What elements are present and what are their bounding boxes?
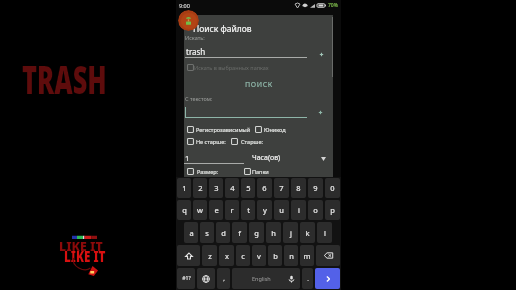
button[interactable]: 0 <box>325 178 340 198</box>
staticText: j <box>290 228 292 238</box>
staticText: Размер: <box>197 168 219 175</box>
button[interactable]: Backspace <box>316 245 340 266</box>
staticText: q <box>182 205 187 215</box>
staticText: x <box>225 251 229 261</box>
staticText: Не старше: <box>196 138 226 145</box>
button[interactable]: e <box>209 200 223 220</box>
staticText: r <box>230 205 234 215</box>
staticText: 6 <box>262 183 267 193</box>
staticText: Поиск файлов <box>193 23 252 35</box>
button[interactable]: j <box>283 222 298 243</box>
staticText: b <box>273 251 278 261</box>
staticText: Регистрозависимый <box>196 126 251 133</box>
staticText: 70% <box>328 2 338 9</box>
button[interactable]: y <box>257 200 272 220</box>
staticText: g <box>254 228 259 238</box>
staticText: LIKE IT <box>64 245 106 267</box>
staticText: 1 <box>185 153 190 163</box>
button[interactable]: 9 <box>308 178 323 198</box>
button[interactable]: h <box>266 222 281 243</box>
staticText: 0 <box>330 183 335 193</box>
staticText: Старше: <box>241 138 263 145</box>
button[interactable]: 5 <box>241 178 255 198</box>
button[interactable]: Switch language <box>197 268 215 289</box>
button[interactable]: k <box>300 222 315 243</box>
staticText: y <box>263 205 267 215</box>
button[interactable]: q <box>177 200 191 220</box>
staticText: Искать: <box>185 34 205 41</box>
staticText: d <box>221 228 226 238</box>
button[interactable]: l <box>317 222 332 243</box>
button[interactable]: Enter <box>315 268 340 289</box>
button[interactable]: 4 <box>225 178 239 198</box>
staticText: Папки <box>252 168 269 175</box>
staticText: c <box>241 251 245 261</box>
button[interactable]: , <box>217 268 230 289</box>
button[interactable]: #1? <box>177 268 195 289</box>
staticText: z <box>208 251 212 261</box>
staticText: s <box>205 228 209 238</box>
button[interactable]: f <box>232 222 247 243</box>
staticText: , <box>223 275 225 283</box>
staticText: k <box>305 228 310 238</box>
other: Voice input <box>288 275 295 283</box>
button[interactable]: 2 <box>193 178 207 198</box>
staticText: 5 <box>246 183 251 193</box>
staticText: English <box>252 275 271 282</box>
button[interactable]: d <box>216 222 230 243</box>
staticText: 1 <box>182 183 187 193</box>
staticText: ПОИСК <box>245 80 273 90</box>
staticText: Юникод <box>264 126 286 133</box>
button[interactable]: b <box>268 245 282 266</box>
staticText: t <box>247 205 250 215</box>
staticText: e <box>214 205 219 215</box>
staticText: o <box>313 205 318 215</box>
staticText: w <box>197 205 203 215</box>
staticText: Искать в выбранных папках <box>194 64 269 71</box>
staticText: 4 <box>230 183 235 193</box>
button[interactable]: n <box>284 245 298 266</box>
button[interactable]: x <box>219 245 234 266</box>
button[interactable]: 1 <box>177 178 191 198</box>
button[interactable]: Shift <box>177 245 200 266</box>
button[interactable]: . <box>302 268 313 289</box>
button[interactable]: a <box>184 222 198 243</box>
button[interactable]: r <box>225 200 239 220</box>
button[interactable]: m <box>300 245 314 266</box>
staticText: v <box>257 251 261 261</box>
staticText: #1? <box>182 275 191 282</box>
button[interactable]: z <box>202 245 217 266</box>
button[interactable]: English <box>232 268 300 289</box>
button[interactable]: s <box>200 222 214 243</box>
staticText: 3 <box>214 183 219 193</box>
button[interactable]: ПОИСК <box>184 77 333 92</box>
staticText: u <box>279 205 284 215</box>
button[interactable]: 8 <box>291 178 306 198</box>
button[interactable]: 7 <box>274 178 289 198</box>
button[interactable]: t <box>241 200 255 220</box>
staticText: 9:00 <box>179 2 190 9</box>
button[interactable]: 3 <box>209 178 223 198</box>
button[interactable]: 6 <box>257 178 272 198</box>
staticText: i <box>298 205 300 215</box>
staticText: m <box>303 251 311 261</box>
button[interactable]: u <box>274 200 289 220</box>
button[interactable]: w <box>193 200 207 220</box>
staticText: h <box>271 228 276 238</box>
staticText: 8 <box>296 183 301 193</box>
button[interactable]: p <box>325 200 340 220</box>
staticText: TRASH <box>22 53 107 106</box>
staticText: 9 <box>313 183 318 193</box>
staticText: С текстом: <box>185 95 213 102</box>
staticText: . <box>307 275 309 283</box>
button[interactable]: c <box>236 245 250 266</box>
staticText: a <box>189 228 194 238</box>
staticText: l <box>324 228 326 238</box>
staticText: 2 <box>198 183 203 193</box>
staticText: trash <box>186 46 206 57</box>
button[interactable]: i <box>291 200 306 220</box>
button[interactable]: Recording indicator <box>178 10 199 31</box>
button[interactable]: o <box>308 200 323 220</box>
button[interactable]: v <box>252 245 266 266</box>
button[interactable]: g <box>249 222 264 243</box>
